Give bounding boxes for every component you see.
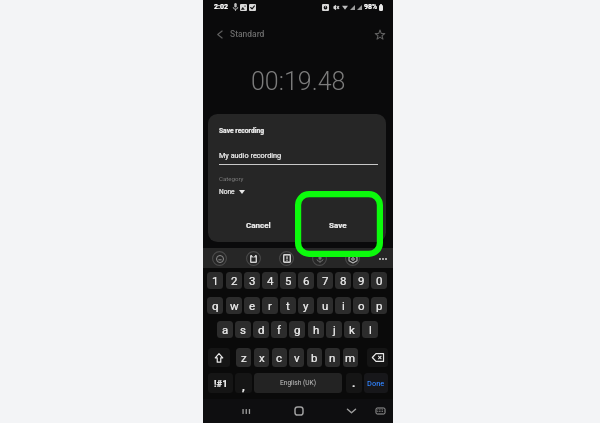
button[interactable]: Done [364,373,388,393]
button[interactable]: More options [375,251,390,266]
button[interactable]: g [289,321,305,338]
button[interactable]: 7 [317,272,333,289]
staticText: 00:19.48 [251,67,346,96]
staticText: Standard [230,29,265,39]
button[interactable]: Backspace [367,348,388,367]
staticText: u [322,299,329,312]
button[interactable]: v [289,348,304,367]
staticText: , [242,379,245,392]
button[interactable]: 2 [226,272,242,289]
staticText: c [276,351,283,364]
button[interactable]: m [343,348,358,367]
staticText: 9 [358,274,365,287]
staticText: j [333,323,336,336]
button[interactable]: w [226,297,242,314]
staticText: n [329,351,336,364]
staticText: d [258,323,265,336]
button[interactable]: 3 [244,272,260,289]
staticText: 2 [231,274,238,287]
button[interactable]: Emoji [212,251,227,266]
button[interactable]: z [236,348,251,367]
button[interactable]: Back [343,403,359,419]
button[interactable]: Favorite [372,26,388,42]
staticText: English (UK) [280,379,316,387]
button[interactable]: l [362,321,378,338]
button[interactable]: s [235,321,251,338]
button[interactable]: e [244,297,260,314]
button[interactable]: Voice input [312,251,327,266]
staticText: a [222,323,229,336]
button[interactable]: , [235,373,252,393]
button[interactable]: h [308,321,324,338]
staticText: o [358,299,365,312]
button[interactable]: . [346,373,362,393]
button[interactable]: Clipboard [246,251,261,266]
button[interactable]: 9 [353,272,369,289]
button[interactable]: Text editing [279,251,294,266]
button[interactable]: Back [213,27,227,41]
button[interactable]: k [344,321,360,338]
staticText: . [352,376,356,389]
staticText: g [294,323,301,336]
button[interactable]: 4 [262,272,278,289]
staticText: t [286,299,290,312]
staticText: h [313,323,320,336]
staticText: 8 [340,274,347,287]
staticText: 1 [212,274,219,287]
button[interactable]: c [272,348,287,367]
button[interactable]: 5 [280,272,296,289]
staticText: f [277,323,281,336]
staticText: e [249,299,256,312]
staticText: Cancel [246,221,271,230]
button[interactable]: t [280,297,296,314]
staticText: 2:02 [214,3,229,11]
button[interactable]: Save [299,208,377,242]
staticText: 6 [303,274,310,287]
staticText: None [219,188,235,196]
button[interactable]: Settings [345,251,360,266]
button[interactable]: i [335,297,351,314]
staticText: w [230,299,239,312]
staticText: i [342,299,345,312]
staticText: Save recording [219,127,265,135]
staticText: l [369,323,372,336]
button[interactable]: 0 [371,272,387,289]
staticText: p [376,299,383,312]
button[interactable]: b [307,348,322,367]
button[interactable]: q [207,297,223,314]
staticText: Category [219,175,244,182]
button[interactable]: a [217,321,233,338]
staticText: k [349,323,355,336]
staticText: My audio recording [219,151,282,160]
button[interactable]: r [262,297,278,314]
button[interactable]: Hide keyboard [372,403,388,419]
button[interactable]: f [271,321,287,338]
button[interactable]: p [371,297,387,314]
button[interactable]: x [254,348,269,367]
button[interactable]: d [253,321,269,338]
staticText: !#1 [214,378,228,389]
staticText: z [241,351,247,364]
staticText: x [259,351,265,364]
button[interactable]: 6 [298,272,314,289]
staticText: s [240,323,246,336]
staticText: 7 [322,274,329,287]
button[interactable]: !#1 [208,373,233,393]
button[interactable]: Recents [238,403,254,419]
button[interactable]: 1 [207,272,223,289]
button[interactable]: Cancel [219,208,297,242]
staticText: m [345,351,356,364]
button[interactable]: j [326,321,342,338]
button[interactable]: y [298,297,314,314]
staticText: Done [367,379,385,388]
button[interactable]: Home [291,403,307,419]
button[interactable]: Shift [208,348,230,367]
button[interactable]: n [325,348,340,367]
button[interactable]: o [353,297,369,314]
staticText: 5 [285,274,292,287]
staticText: r [268,299,272,312]
button[interactable]: 8 [335,272,351,289]
button[interactable]: u [317,297,333,314]
staticText: Save [329,221,347,230]
button[interactable]: English (UK) [254,373,342,393]
